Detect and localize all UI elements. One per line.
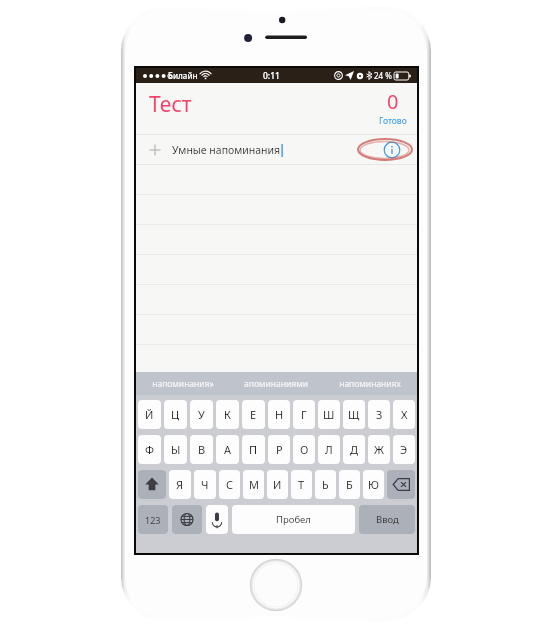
staticText: М (249, 477, 259, 492)
button[interactable]: Р (268, 435, 290, 464)
staticText: Билайн (168, 70, 198, 81)
staticText: 123 (145, 514, 161, 526)
button[interactable]: Умные напоминания (136, 135, 417, 165)
button[interactable]: Ы (164, 435, 187, 464)
staticText: Т (298, 477, 305, 492)
staticText: З (376, 407, 383, 422)
button[interactable]: Ж (368, 435, 390, 464)
button[interactable]: М (243, 470, 264, 499)
button[interactable]: З (368, 400, 390, 429)
staticText: Ц (171, 407, 180, 422)
staticText: А (224, 442, 232, 457)
button[interactable]: Ш (318, 400, 340, 429)
staticText: апоминаниями (244, 378, 308, 390)
staticText: И (273, 477, 282, 492)
button[interactable]: И (267, 470, 288, 499)
button[interactable]: П (242, 435, 265, 464)
button[interactable]: Ввод (359, 505, 415, 534)
staticText: С (226, 477, 234, 492)
button[interactable]: Ю (363, 470, 384, 499)
staticText: Ю (368, 477, 379, 492)
button[interactable]: С (219, 470, 240, 499)
staticText: Ф (145, 442, 154, 457)
staticText: Р (276, 442, 283, 457)
staticText: Г (301, 407, 307, 422)
staticText: В (198, 442, 206, 457)
staticText: Ы (171, 442, 181, 457)
button[interactable]: Ц (164, 400, 187, 429)
staticText: Е (250, 407, 257, 422)
staticText: напоминаниях (339, 378, 401, 390)
staticText: Ж (374, 442, 384, 457)
button[interactable]: Е (242, 400, 265, 429)
staticText: Щ (348, 407, 360, 422)
staticText: Н (275, 407, 284, 422)
staticText: Ь (322, 477, 329, 492)
button[interactable]: 123 (138, 505, 168, 534)
button[interactable]: Б (339, 470, 360, 499)
button[interactable]: Shift (138, 470, 166, 499)
staticText: Й (145, 407, 154, 422)
staticText: У (198, 407, 205, 422)
staticText: Б (346, 477, 353, 492)
staticText: К (224, 407, 231, 422)
button[interactable]: Т (291, 470, 312, 499)
button[interactable]: Щ (343, 400, 365, 429)
staticText: Х (401, 407, 408, 422)
button[interactable]: напоминания» (136, 372, 229, 395)
button[interactable]: Информация (383, 141, 401, 159)
button[interactable]: У (190, 400, 213, 429)
staticText: 0 (387, 88, 399, 115)
button[interactable]: Микрофон (206, 505, 228, 534)
staticText: Ш (323, 407, 335, 422)
staticText: Готово (379, 115, 407, 127)
button[interactable]: Х (393, 400, 415, 429)
button[interactable]: Ь (315, 470, 336, 499)
staticText: О (300, 442, 309, 457)
button[interactable]: Язык (172, 505, 202, 534)
button[interactable]: напоминаниях (323, 372, 417, 395)
staticText: Д (350, 442, 359, 457)
button[interactable]: О (293, 435, 315, 464)
button[interactable]: Г (293, 400, 315, 429)
button[interactable]: Пробел (232, 505, 355, 534)
staticText: Ч (201, 477, 209, 492)
button[interactable]: Ф (138, 435, 161, 464)
button[interactable]: Й (138, 400, 161, 429)
button[interactable]: Ч (194, 470, 216, 499)
button[interactable]: Д (343, 435, 365, 464)
staticText: Тест (149, 90, 192, 119)
staticText: П (249, 442, 258, 457)
staticText: Умные напоминания (172, 143, 281, 157)
button[interactable]: Я (169, 470, 191, 499)
button[interactable]: Э (393, 435, 415, 464)
button[interactable]: Л (318, 435, 340, 464)
staticText: напоминания» (152, 378, 214, 390)
button[interactable]: В (190, 435, 213, 464)
button[interactable]: Н (268, 400, 290, 429)
button[interactable]: апоминаниями (229, 372, 323, 395)
staticText: Пробел (276, 513, 311, 526)
button[interactable]: А (216, 435, 239, 464)
staticText: Ввод (376, 513, 399, 526)
staticText: Э (400, 442, 408, 457)
staticText: 24 % (374, 70, 392, 81)
staticText: 0:11 (263, 70, 280, 82)
button[interactable]: К (216, 400, 239, 429)
staticText: Я (176, 477, 184, 492)
staticText: Л (325, 442, 333, 457)
button[interactable]: Удалить (387, 470, 415, 499)
